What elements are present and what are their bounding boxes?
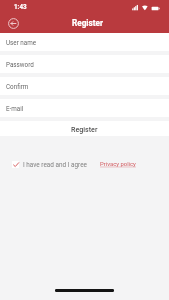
button[interactable]: I have read and I agree: [12, 161, 19, 168]
staticText: Password: [6, 61, 34, 68]
staticText: 1:43: [14, 3, 27, 10]
button[interactable]: Password: [0, 55, 169, 73]
staticText: Register: [71, 125, 98, 133]
staticText: Confirm: [6, 83, 29, 90]
staticText: Register: [72, 18, 103, 28]
button[interactable]: E-mail: [0, 99, 169, 117]
button[interactable]: Back: [5, 15, 21, 31]
button[interactable]: Privacy policy: [100, 161, 136, 168]
staticText: User name: [6, 39, 37, 46]
staticText: E-mail: [6, 105, 24, 112]
button[interactable]: Register: [0, 121, 169, 136]
button[interactable]: Confirm: [0, 77, 169, 95]
staticText: I have read and I agree: [23, 161, 87, 169]
staticText: Privacy policy: [100, 161, 136, 168]
button[interactable]: User name: [0, 33, 169, 51]
